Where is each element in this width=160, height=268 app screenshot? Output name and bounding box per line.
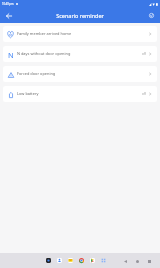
staticText: off <box>142 92 146 96</box>
button[interactable]: Home <box>134 258 140 264</box>
button[interactable]: Forced door opening <box>3 66 157 82</box>
staticText: Family member arrived home <box>17 31 72 36</box>
button[interactable]: Chrome <box>79 258 84 263</box>
button[interactable]: Recents <box>146 258 152 264</box>
button[interactable]: All apps <box>101 258 106 263</box>
button[interactable]: Back <box>122 258 128 264</box>
staticText: Scenario reminder <box>18 12 142 19</box>
button[interactable]: Camera <box>46 258 51 263</box>
staticText: N <box>8 50 14 59</box>
button[interactable]: Family member arrived home <box>3 26 157 42</box>
staticText: 10:49 pm <box>2 2 14 6</box>
button[interactable]: N <box>3 46 157 62</box>
staticText: off <box>142 52 146 56</box>
button[interactable]: Play Store <box>90 258 95 263</box>
staticText: N days without door opening <box>17 51 71 56</box>
staticText: Low battery <box>17 91 39 96</box>
staticText: Forced door opening <box>17 71 56 76</box>
button[interactable]: Contacts <box>57 258 62 263</box>
button[interactable]: Low battery <box>3 86 157 102</box>
button[interactable]: Help <box>142 8 160 23</box>
button[interactable]: Back <box>0 8 18 23</box>
button[interactable]: Mail <box>68 258 73 263</box>
